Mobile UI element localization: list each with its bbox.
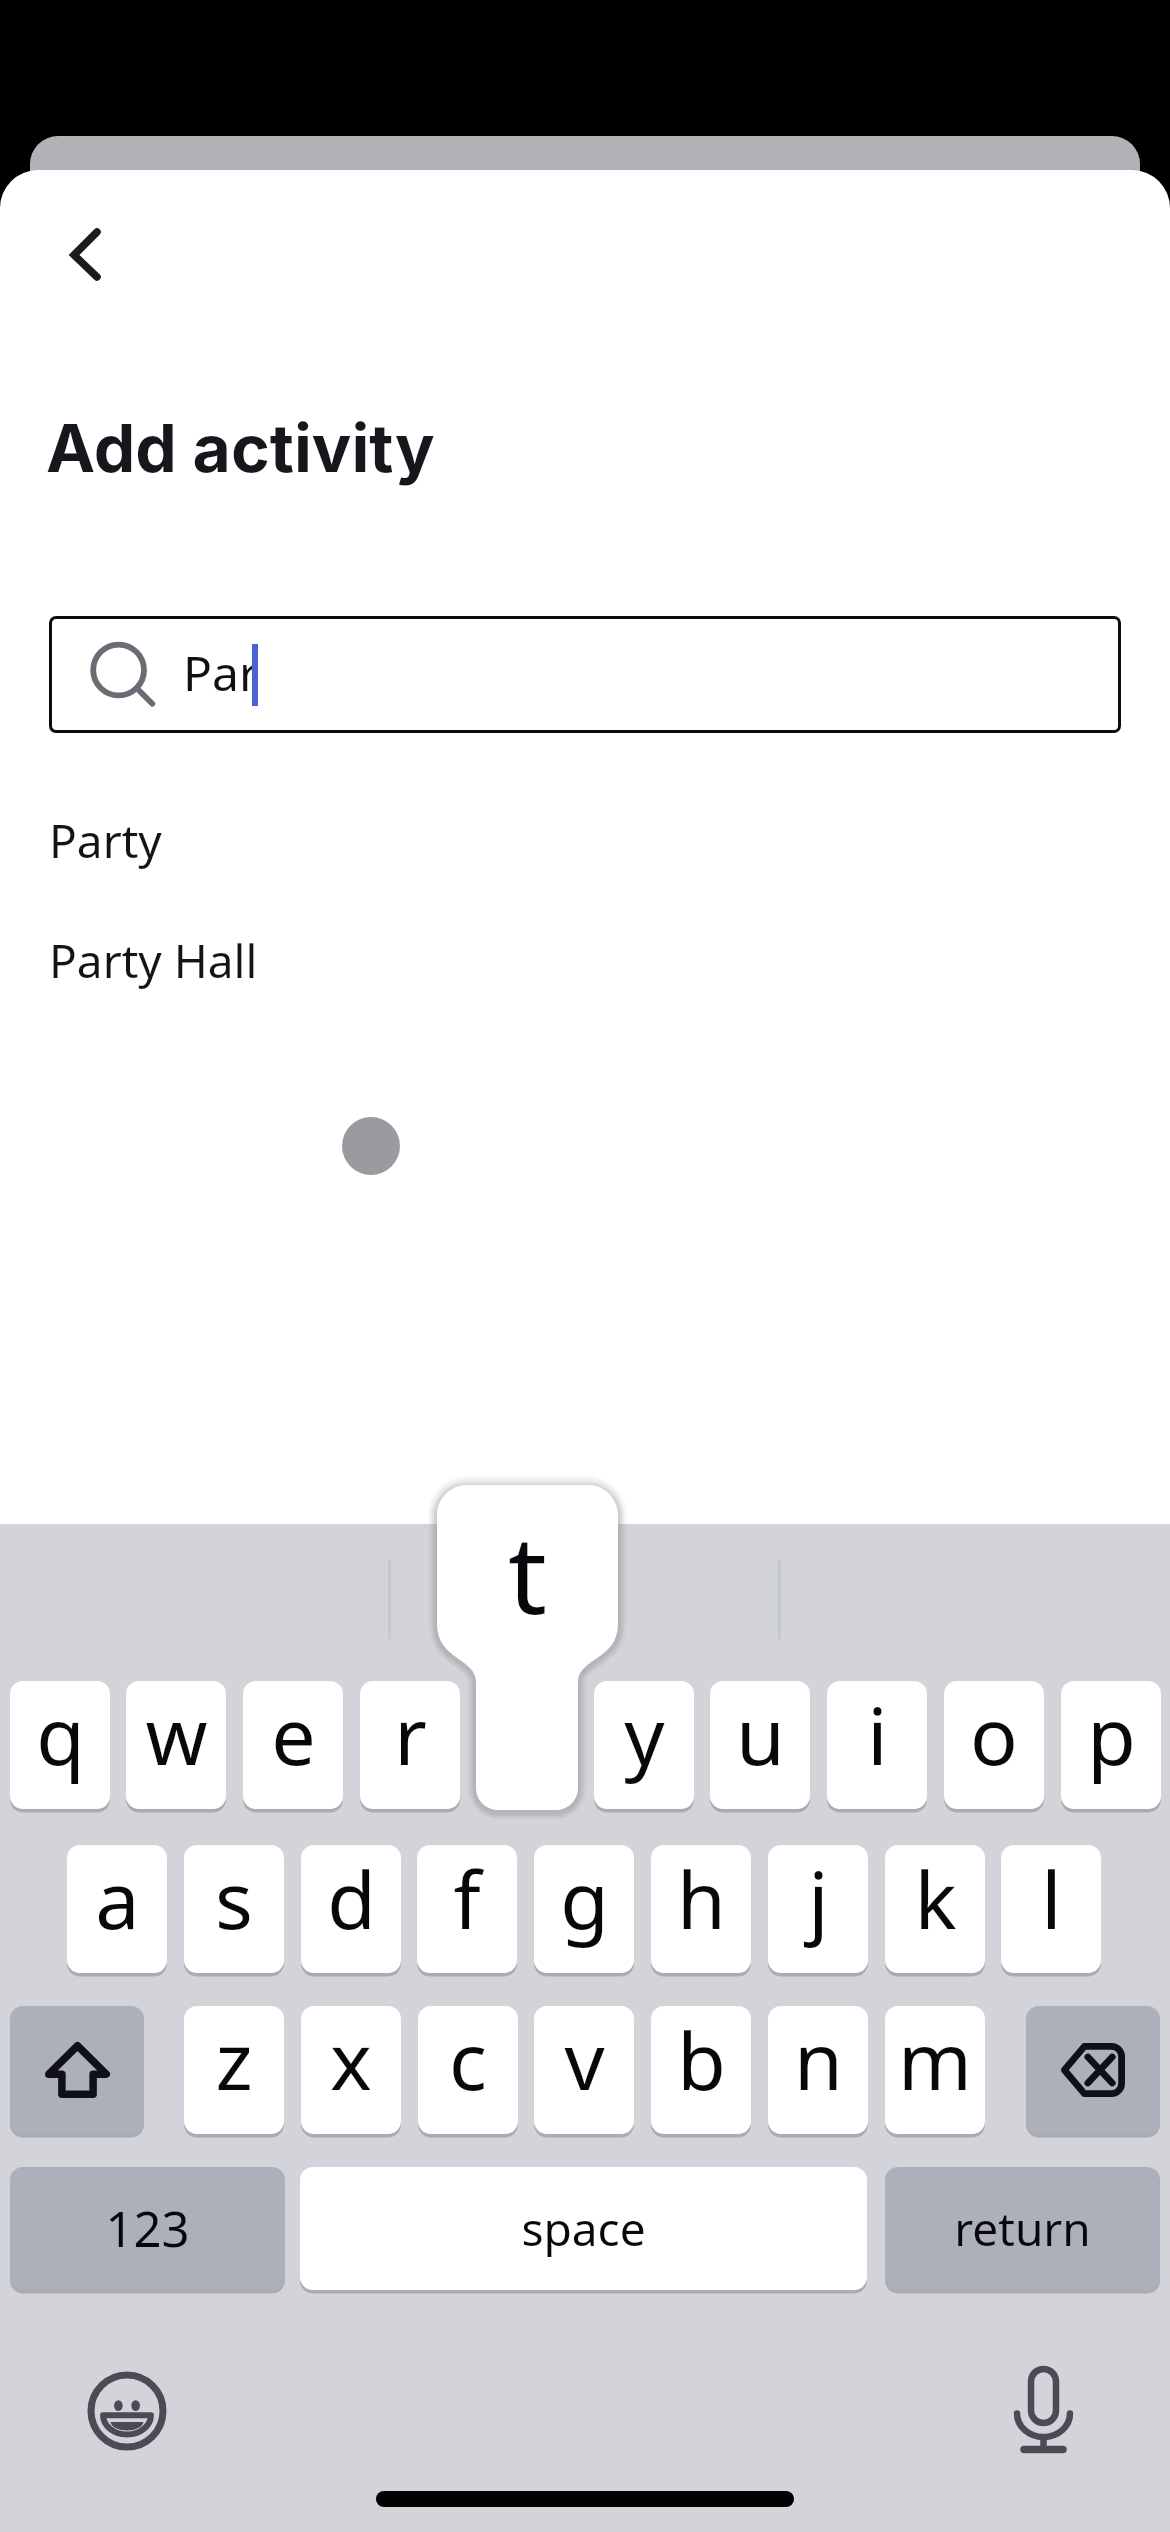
staticText: c <box>449 2006 487 2114</box>
button[interactable]: t <box>477 1681 577 1809</box>
button[interactable]: y <box>594 1681 694 1809</box>
button[interactable]: u <box>710 1681 810 1809</box>
button[interactable]: l <box>1001 1845 1101 1973</box>
button[interactable]: s <box>184 1845 284 1973</box>
button[interactable]: o <box>944 1681 1044 1809</box>
staticText: b <box>677 2006 726 2114</box>
staticText: h <box>677 1845 726 1953</box>
button[interactable]: j <box>768 1845 868 1973</box>
staticText: p <box>1087 1681 1136 1789</box>
button[interactable]: Par <box>49 616 1121 733</box>
staticText: j <box>808 1845 829 1953</box>
button[interactable]: w <box>126 1681 226 1809</box>
staticText: o <box>970 1681 1018 1789</box>
staticText: f <box>453 1845 481 1953</box>
staticText: g <box>560 1845 609 1953</box>
staticText: y <box>624 1681 665 1789</box>
button[interactable]: z <box>184 2006 284 2134</box>
button[interactable]: space <box>300 2167 867 2290</box>
staticText: q <box>36 1681 85 1789</box>
button[interactable]: d <box>301 1845 401 1973</box>
button[interactable]: g <box>534 1845 634 1973</box>
staticText: Par <box>183 640 259 705</box>
staticText: s <box>215 1845 253 1953</box>
button[interactable]: return <box>885 2167 1160 2290</box>
staticText: k <box>914 1845 957 1953</box>
button[interactable]: b <box>651 2006 751 2134</box>
button[interactable]: x <box>301 2006 401 2134</box>
staticText: Party <box>49 809 162 872</box>
staticText: i <box>867 1681 888 1789</box>
button[interactable]: c <box>418 2006 518 2134</box>
button[interactable]: Party Hall <box>0 913 1170 1007</box>
staticText: Party Hall <box>49 929 258 992</box>
staticText: e <box>271 1681 316 1789</box>
button[interactable]: a <box>67 1845 167 1973</box>
button[interactable]: Dictation <box>1013 2365 1071 2453</box>
button[interactable]: Backspace <box>1026 2006 1160 2134</box>
button[interactable]: i <box>827 1681 927 1809</box>
staticText: return <box>954 2197 1091 2260</box>
staticText: a <box>95 1845 140 1953</box>
staticText: r <box>394 1681 427 1789</box>
button[interactable]: f <box>417 1845 517 1973</box>
staticText: space <box>521 2197 646 2260</box>
button[interactable]: Back <box>30 198 140 312</box>
staticText: v <box>564 2006 605 2114</box>
staticText: m <box>898 2006 972 2114</box>
button[interactable]: e <box>243 1681 343 1809</box>
button[interactable]: 123 <box>10 2167 285 2290</box>
button[interactable]: q <box>10 1681 110 1809</box>
staticText: d <box>327 1845 376 1953</box>
staticText: u <box>736 1681 785 1789</box>
staticText: n <box>794 2006 843 2114</box>
button[interactable]: p <box>1061 1681 1161 1809</box>
button[interactable]: m <box>885 2006 985 2134</box>
button[interactable]: Shift <box>10 2006 144 2134</box>
staticText: z <box>215 2006 253 2114</box>
staticText: t <box>508 1499 547 1646</box>
staticText: x <box>330 2006 372 2114</box>
staticText: w <box>145 1681 208 1789</box>
button[interactable]: r <box>360 1681 460 1809</box>
staticText: 123 <box>105 2195 190 2262</box>
staticText: l <box>1041 1845 1062 1953</box>
button[interactable]: Party <box>0 793 1170 887</box>
button[interactable]: k <box>885 1845 985 1973</box>
button[interactable]: v <box>534 2006 634 2134</box>
button[interactable]: Emoji keyboard <box>87 2371 167 2451</box>
button[interactable]: h <box>651 1845 751 1973</box>
button[interactable]: n <box>768 2006 868 2134</box>
staticText: Add activity <box>46 408 435 488</box>
